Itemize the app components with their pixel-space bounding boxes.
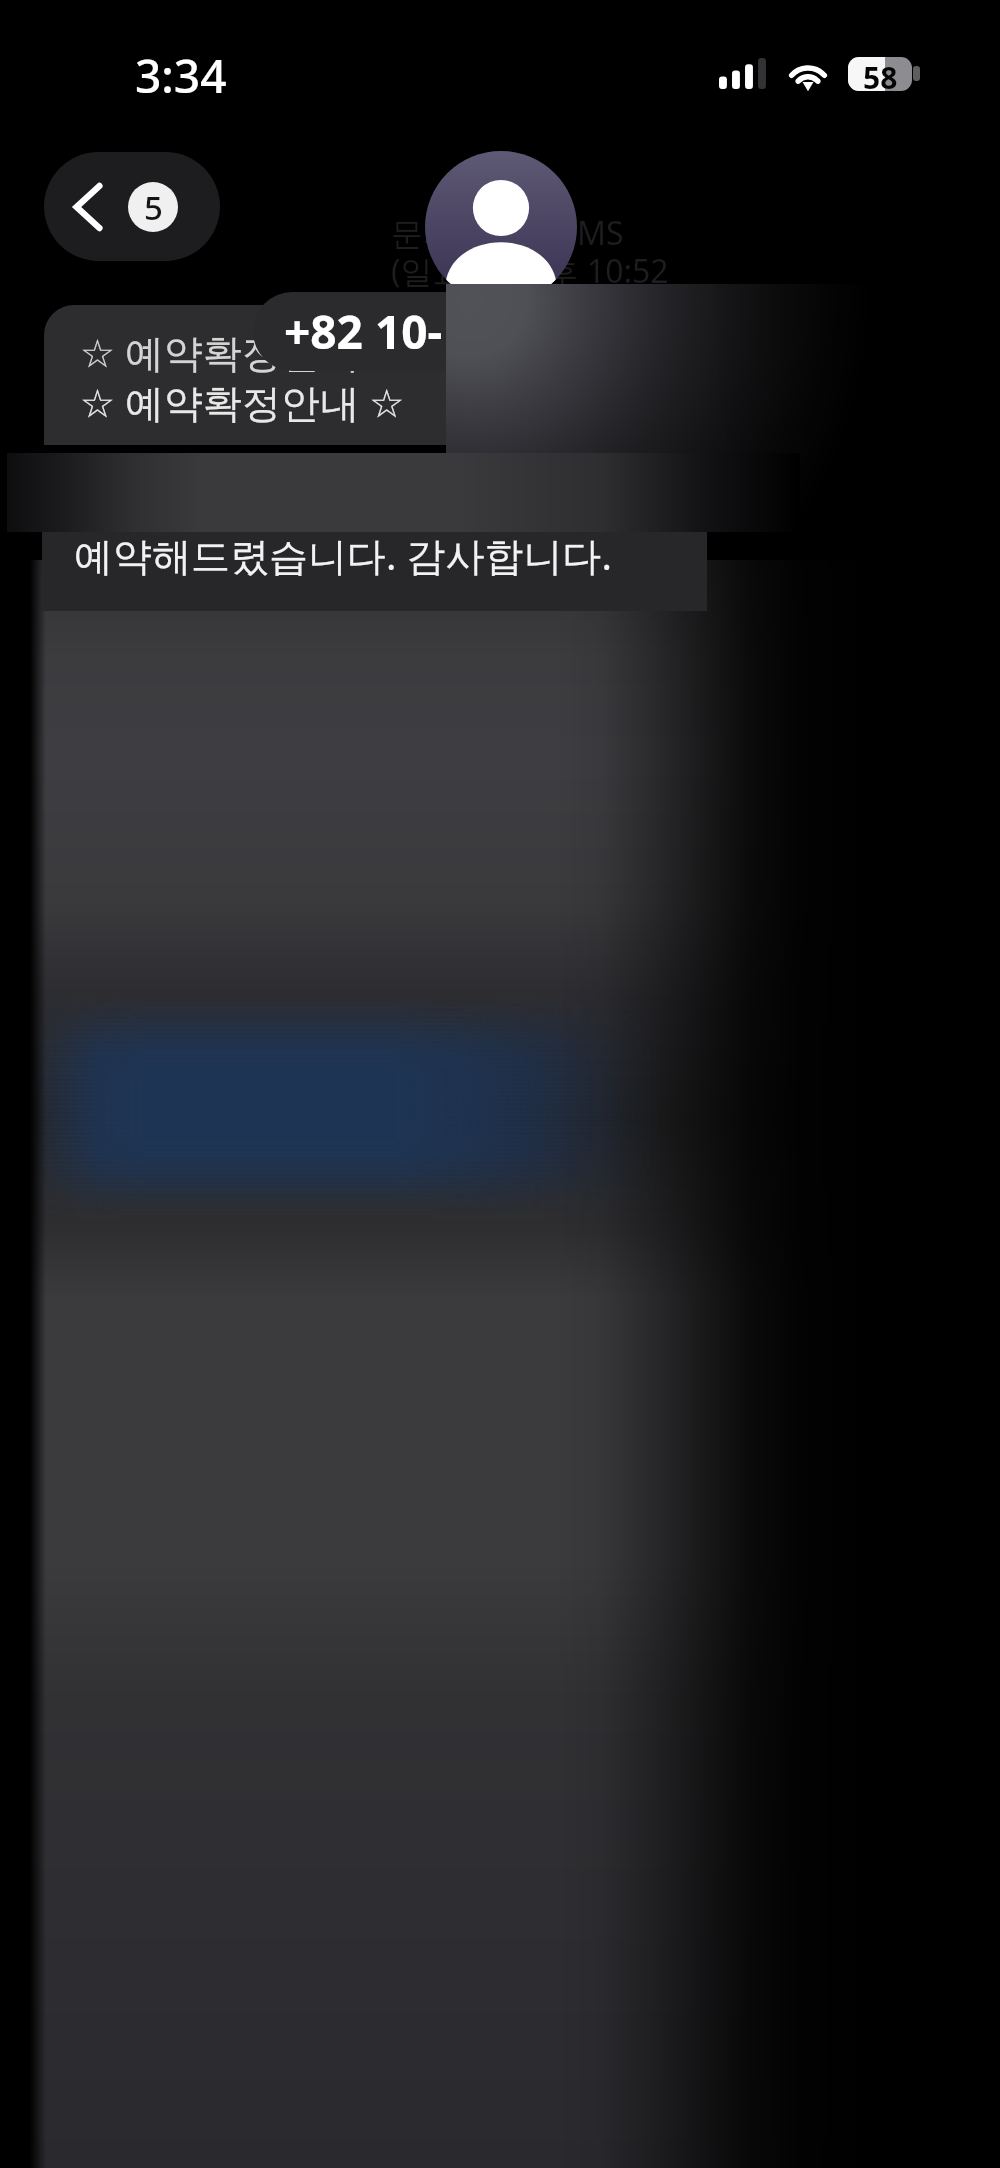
staticText: 문자메시지 SMS [391, 211, 624, 255]
staticText: +82 10- [284, 300, 443, 363]
staticText: ☆ 예약확정안내 ☆ [80, 325, 405, 378]
button[interactable]: +82 10- [253, 292, 533, 371]
button[interactable]: ☆ 예약확정안내 ☆ [44, 305, 448, 445]
staticText: 3:34 [135, 44, 227, 107]
button[interactable]: Contact avatar [425, 151, 577, 303]
button[interactable]: 예약해드렸습니다. 감사합니다. [42, 532, 707, 611]
staticText: ☆ 예약확정안내 ☆ [80, 375, 405, 428]
staticText: 58 [863, 57, 898, 91]
staticText: 예약해드렸습니다. 감사합니다. [74, 528, 613, 581]
staticText: (일요일) 오후 10:52 [391, 249, 669, 293]
staticText: 5 [144, 185, 163, 230]
button[interactable]: Back, 5 unread [44, 152, 220, 261]
